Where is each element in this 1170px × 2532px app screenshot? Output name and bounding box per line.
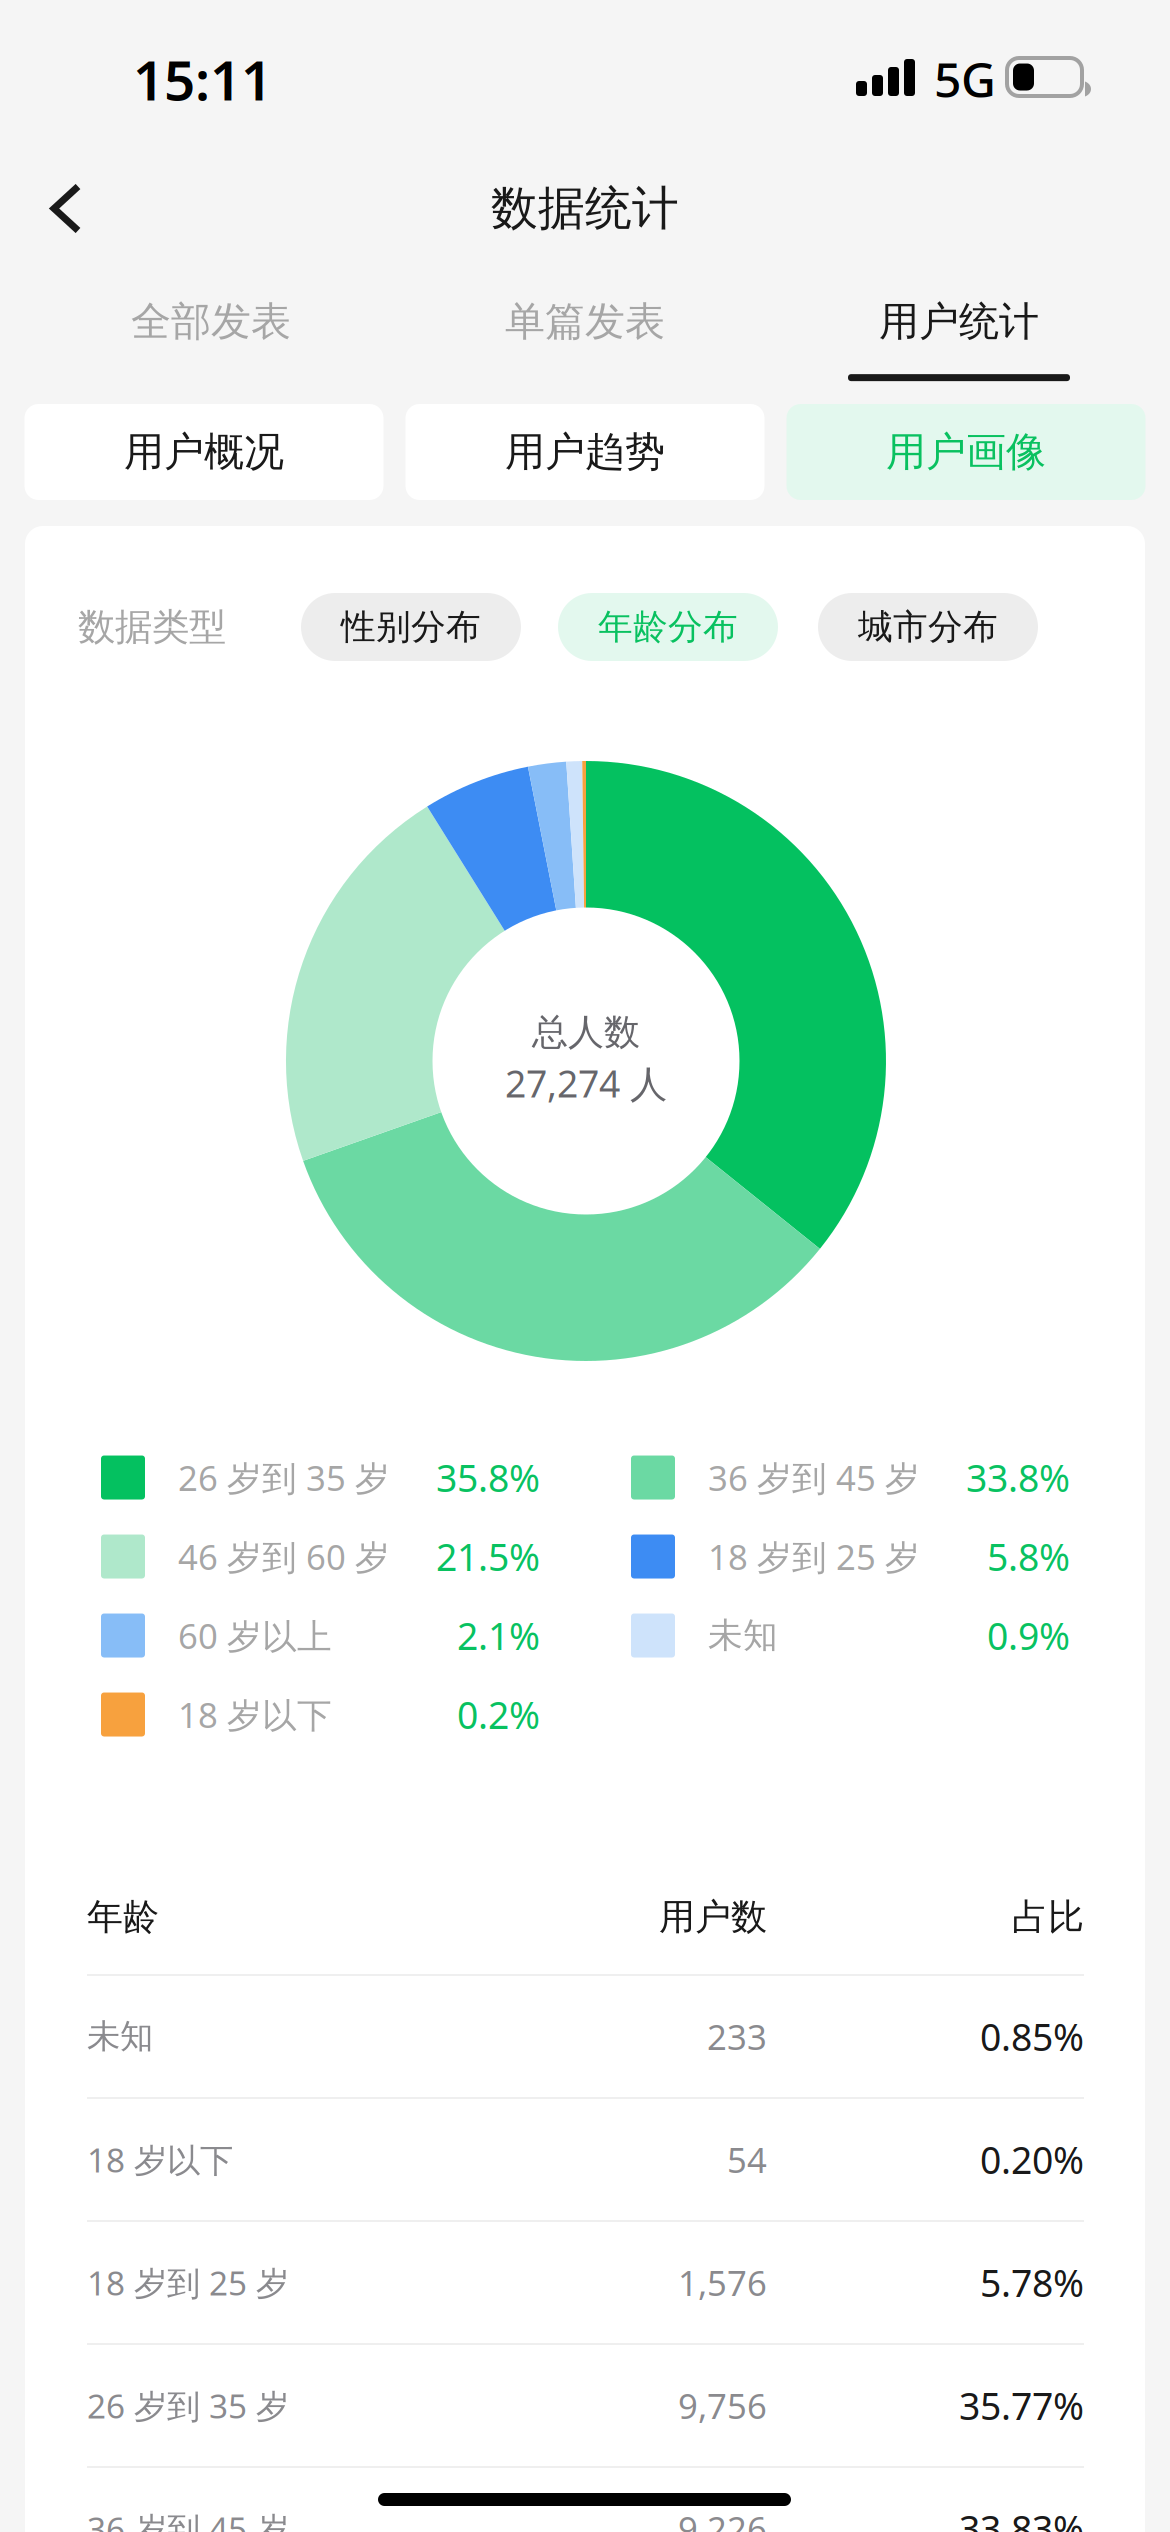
staticText: 年龄 — [87, 1895, 159, 1939]
staticText: 21.5% — [436, 1532, 540, 1581]
staticText: 18 岁以下 — [87, 2137, 233, 2182]
staticText: 9,756 — [678, 2382, 767, 2428]
staticText: 33.8% — [966, 1453, 1070, 1502]
staticText: 18 岁到 25 岁 — [708, 1533, 920, 1579]
staticText: 用户画像 — [886, 427, 1046, 476]
staticText: 18 岁到 25 岁 — [87, 2260, 289, 2305]
staticText: 性别分布 — [341, 606, 481, 648]
button[interactable]: 城市分布 — [818, 593, 1038, 661]
staticText: 总人数 — [532, 1010, 640, 1054]
button[interactable]: 用户统计 — [772, 275, 1146, 401]
button[interactable]: 用户画像 — [786, 404, 1145, 500]
staticText: 单篇发表 — [505, 297, 665, 346]
staticText: 2.1% — [457, 1611, 540, 1660]
button[interactable]: 用户概况 — [24, 404, 383, 500]
staticText: 城市分布 — [858, 606, 998, 648]
staticText: 占比 — [1012, 1895, 1084, 1939]
staticText: 18 岁以下 — [178, 1691, 332, 1737]
staticText: 0.20% — [980, 2135, 1084, 2184]
staticText: 用户趋势 — [505, 427, 665, 476]
staticText: 36 岁到 45 岁 — [87, 2506, 289, 2532]
staticText: 233 — [707, 2013, 767, 2059]
button[interactable]: 全部发表 — [24, 275, 398, 401]
staticText: 60 岁以上 — [178, 1612, 332, 1658]
staticText: 数据类型 — [78, 604, 226, 650]
staticText: 1,576 — [678, 2259, 767, 2305]
staticText: 9,226 — [678, 2505, 767, 2532]
button[interactable]: 返回 — [0, 136, 136, 281]
staticText: 0.9% — [987, 1611, 1070, 1660]
staticText: 26 岁到 35 岁 — [87, 2383, 289, 2428]
button[interactable]: 单篇发表 — [398, 275, 772, 401]
staticText: 数据统计 — [491, 180, 679, 237]
staticText: 36 岁到 45 岁 — [708, 1454, 920, 1500]
staticText: 未知 — [708, 1614, 778, 1657]
staticText: 26 岁到 35 岁 — [178, 1454, 390, 1500]
staticText: 35.77% — [959, 2381, 1084, 2430]
staticText: 15:11 — [133, 43, 272, 116]
staticText: 未知 — [87, 2016, 153, 2057]
button[interactable]: 用户趋势 — [405, 404, 764, 500]
staticText: 46 岁到 60 岁 — [178, 1533, 390, 1579]
staticText: 0.2% — [457, 1690, 540, 1739]
staticText: 用户概况 — [124, 427, 284, 476]
staticText: 35.8% — [436, 1453, 540, 1502]
staticText: 5.8% — [987, 1532, 1070, 1581]
staticText: 用户统计 — [879, 297, 1039, 346]
staticText: 年龄分布 — [598, 606, 738, 648]
staticText: 用户数 — [659, 1895, 767, 1939]
staticText: 0.85% — [980, 2012, 1084, 2061]
staticText: 54 — [727, 2136, 767, 2182]
staticText: 5.78% — [980, 2258, 1084, 2307]
button[interactable]: 性别分布 — [301, 593, 521, 661]
staticText: 27,274 人 — [505, 1058, 667, 1108]
button[interactable]: 年龄分布 — [558, 593, 778, 661]
staticText: 全部发表 — [131, 297, 291, 346]
staticText: 5G — [934, 47, 996, 111]
staticText: 33.83% — [959, 2504, 1084, 2532]
